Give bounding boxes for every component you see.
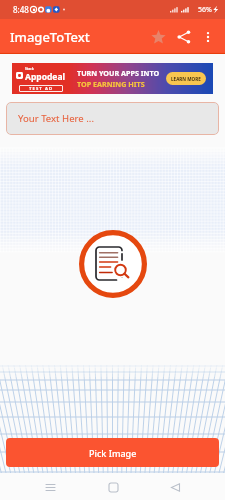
button[interactable]: Recent apps [38, 475, 62, 499]
button[interactable]: Pick image to scan [79, 230, 147, 298]
staticText: TURN YOUR APPS INTO [77, 68, 160, 78]
button[interactable]: Pick Image [6, 438, 219, 467]
button[interactable]: Stack [12, 63, 213, 94]
staticText: ImageToText [10, 28, 90, 46]
staticText: TOP EARNING HITS [77, 79, 145, 89]
staticText: T E S T A D [29, 86, 53, 92]
staticText: 56% [198, 5, 212, 15]
staticText: Appodeal [25, 71, 66, 83]
button[interactable]: Your Text Here ... [6, 102, 219, 135]
staticText: Pick Image [89, 447, 137, 459]
button[interactable]: LEARN MORE [166, 72, 206, 85]
button[interactable]: Share [171, 24, 197, 50]
button[interactable]: Back [163, 475, 187, 499]
button[interactable]: More options [197, 26, 219, 48]
staticText: Your Text Here ... [18, 112, 94, 125]
button[interactable]: Rate [145, 24, 171, 50]
staticText: LEARN MORE [171, 76, 201, 82]
button[interactable]: Home [101, 475, 125, 499]
staticText: Stack [25, 67, 34, 71]
staticText: 8:48 [13, 4, 29, 15]
